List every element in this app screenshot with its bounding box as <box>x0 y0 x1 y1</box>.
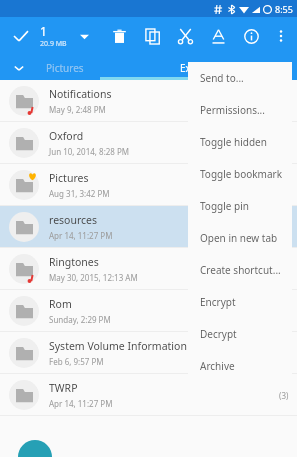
staticText: Jun 10, 2014, 8:28 PM <box>49 146 130 157</box>
button[interactable]: More options <box>271 26 291 46</box>
button[interactable]: Archive <box>188 350 292 382</box>
button[interactable]: Toggle pin <box>188 190 292 222</box>
staticText: Feb 6, 9:57 PM <box>49 356 104 367</box>
staticText: resources <box>49 213 98 227</box>
button[interactable]: TWRP <box>0 374 297 416</box>
staticText: Rom <box>49 297 72 311</box>
staticText: 8:55 <box>275 3 293 15</box>
staticText: Apr 14, 11:27 PM <box>49 230 113 241</box>
staticText: Notifications <box>49 87 112 101</box>
button[interactable]: Send to... <box>188 62 292 94</box>
button[interactable]: Open in new tab <box>188 222 292 254</box>
staticText: 1 <box>40 23 47 39</box>
button[interactable]: Info <box>240 25 262 47</box>
button[interactable]: Create shortcut... <box>188 254 292 286</box>
staticText: Toggle bookmark <box>200 167 283 181</box>
staticText: Toggle pin <box>200 199 249 213</box>
staticText: May 9, 2:48 PM <box>49 104 106 115</box>
staticText: Send to... <box>200 71 244 85</box>
button[interactable]: Done <box>10 25 32 47</box>
button[interactable]: Ringtones <box>0 248 297 290</box>
button[interactable]: Rom <box>0 290 297 332</box>
button[interactable]: Toggle hidden <box>188 126 292 158</box>
button[interactable]: Pictures <box>38 55 92 80</box>
button[interactable]: Copy <box>141 25 163 47</box>
button[interactable]: Ext SD <box>92 55 297 80</box>
button[interactable]: resources <box>0 206 297 248</box>
staticText: Toggle hidden <box>200 135 267 149</box>
button[interactable]: Notifications <box>0 80 297 122</box>
staticText: Pictures <box>49 171 89 185</box>
button[interactable]: Rename <box>207 25 229 47</box>
button[interactable]: Oxford <box>0 122 297 164</box>
button[interactable]: Add <box>18 440 52 457</box>
staticText: TWRP <box>49 381 78 395</box>
staticText: System Volume Information <box>49 339 187 353</box>
staticText: Apr 14, 11:27 PM <box>49 398 113 409</box>
staticText: Archive <box>200 359 235 373</box>
staticText: Open in new tab <box>200 231 278 245</box>
button[interactable]: Expand <box>74 26 94 46</box>
staticText: May 30, 2015, 12:13 AM <box>49 272 138 283</box>
button[interactable]: Pictures <box>0 164 297 206</box>
staticText: Permissions... <box>200 103 265 117</box>
staticText: Create shortcut... <box>200 263 281 277</box>
button[interactable]: System Volume Information <box>0 332 297 374</box>
staticText: Ringtones <box>49 255 99 269</box>
button[interactable]: Show drives <box>0 55 38 80</box>
button[interactable]: Encrypt <box>188 286 292 318</box>
staticText: Ext SD <box>180 61 210 75</box>
button[interactable]: Toggle bookmark <box>188 158 292 190</box>
staticText: Pictures <box>46 61 84 75</box>
button[interactable]: Decrypt <box>188 318 292 350</box>
button[interactable]: Delete <box>108 25 130 47</box>
staticText: Sunday, 2:29 PM <box>49 314 111 325</box>
staticText: Aug 31, 3:42 PM <box>49 188 110 199</box>
staticText: Decrypt <box>200 327 237 341</box>
staticText: 20.9 MB <box>40 39 67 49</box>
button[interactable]: Permissions... <box>188 94 292 126</box>
button[interactable]: 1 <box>40 23 67 49</box>
button[interactable]: Cut <box>174 25 196 47</box>
staticText: Encrypt <box>200 295 236 309</box>
staticText: Oxford <box>49 129 84 143</box>
staticText: (3) <box>279 390 289 401</box>
